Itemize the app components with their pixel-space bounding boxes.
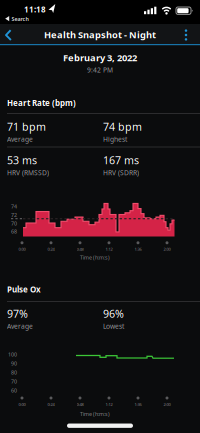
- staticText: Heart Rate (bpm): [7, 97, 76, 108]
- staticText: 70: [11, 220, 17, 227]
- staticText: 2:00: [163, 246, 170, 252]
- staticText: Health Snapshot - Night: [44, 28, 156, 41]
- staticText: 1:36: [134, 246, 141, 252]
- staticText: Time (h:m:s): [80, 254, 110, 261]
- staticText: 96%: [103, 306, 124, 321]
- staticText: 100: [8, 351, 17, 358]
- staticText: 0:48: [76, 246, 83, 252]
- staticText: 9:42 PM: [87, 65, 113, 74]
- staticText: Highest: [103, 135, 127, 144]
- staticText: 71 bpm: [7, 119, 46, 134]
- staticText: 68: [11, 228, 17, 235]
- staticText: Search: [11, 15, 28, 23]
- staticText: 80: [11, 369, 17, 376]
- staticText: Average: [7, 322, 33, 331]
- staticText: 2:00: [163, 402, 170, 407]
- staticText: 72: [11, 211, 17, 219]
- staticText: 0:00: [18, 246, 25, 252]
- staticText: 70: [11, 378, 17, 385]
- staticText: Pulse Ox: [7, 284, 41, 295]
- staticText: Time (h:m:s): [80, 410, 110, 418]
- button[interactable]: Back to Search: [4, 15, 28, 23]
- staticText: 60: [11, 387, 17, 394]
- staticText: 97%: [7, 306, 28, 321]
- button[interactable]: More options: [178, 27, 194, 43]
- staticText: 0:24: [47, 402, 54, 407]
- staticText: Average: [7, 135, 33, 144]
- staticText: 0:24: [47, 246, 54, 252]
- button[interactable]: Back: [0, 27, 16, 43]
- staticText: 90: [11, 360, 17, 367]
- staticText: February 3, 2022: [63, 51, 137, 64]
- staticText: 1:12: [105, 246, 112, 252]
- staticText: 74: [11, 203, 17, 210]
- staticText: 53 ms: [7, 153, 37, 167]
- staticText: HRV (SDRR): [103, 168, 139, 177]
- staticText: 0:48: [76, 402, 83, 407]
- staticText: HRV (RMSSD): [7, 168, 49, 177]
- staticText: 1:12: [105, 402, 112, 407]
- staticText: 0:00: [18, 402, 25, 407]
- staticText: Lowest: [103, 322, 124, 331]
- staticText: 74 bpm: [103, 119, 142, 134]
- staticText: 167 ms: [103, 153, 139, 167]
- staticText: 1:36: [134, 402, 141, 407]
- staticText: 11:18: [24, 4, 46, 15]
